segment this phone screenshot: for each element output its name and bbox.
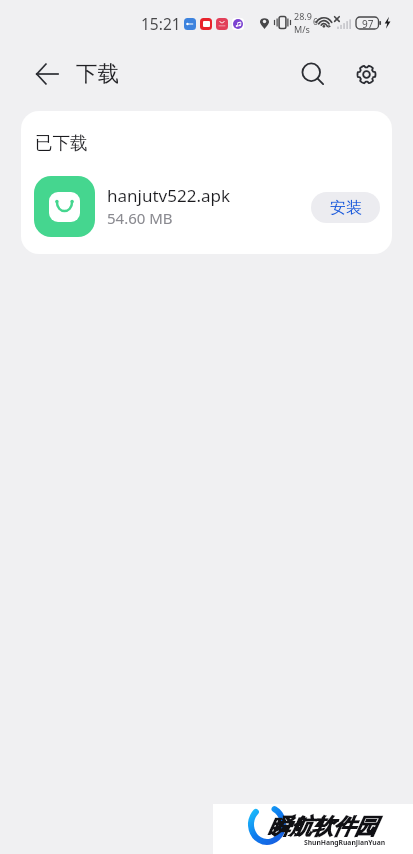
- staticText: M/s: [294, 23, 310, 35]
- staticText: 瞬航软件园: [268, 813, 376, 841]
- staticText: 已下载: [35, 132, 88, 154]
- staticText: 15:21: [141, 13, 181, 34]
- staticText: hanjutv522.apk: [107, 184, 231, 207]
- staticText: 安装: [330, 198, 362, 218]
- staticText: ShunHangRuanJianYuan: [304, 838, 386, 847]
- staticText: 6: [313, 16, 318, 28]
- staticText: 54.60 MB: [107, 208, 173, 228]
- button[interactable]: Settings: [347, 55, 385, 93]
- button[interactable]: Back: [25, 52, 69, 96]
- button[interactable]: Search: [294, 55, 332, 93]
- staticText: 下载: [76, 60, 119, 87]
- staticText: 97: [362, 17, 374, 29]
- button[interactable]: 安装: [311, 192, 380, 223]
- staticText: 28.9: [294, 10, 312, 22]
